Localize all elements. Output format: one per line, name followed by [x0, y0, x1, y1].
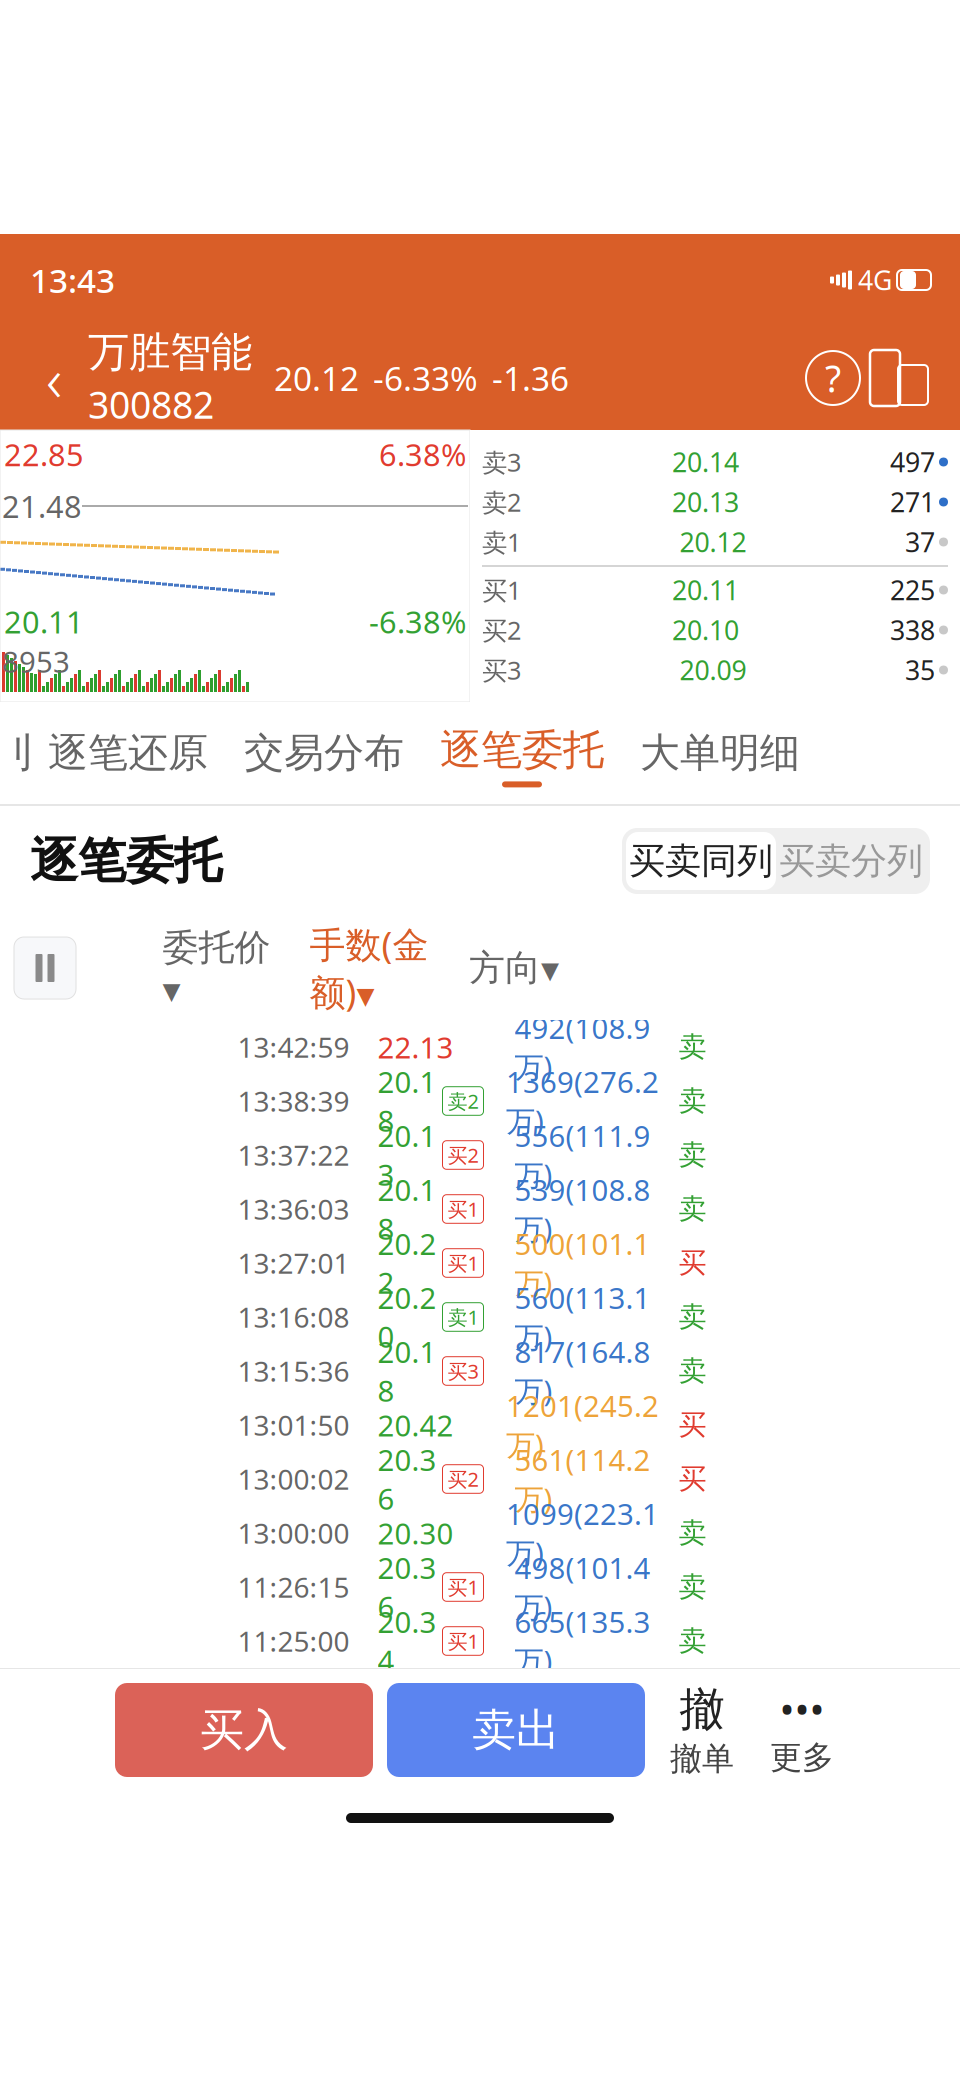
staticText: 13:43 — [30, 258, 115, 302]
staticText: 11:26:15 — [237, 1568, 349, 1606]
staticText: 买卖分列 — [779, 839, 923, 883]
staticText: 20.42 — [377, 1405, 453, 1444]
staticText: 卖 — [678, 1192, 706, 1226]
staticText: 561(114.2万) — [514, 1440, 650, 1518]
button[interactable]: 13:37:22 — [0, 1128, 960, 1182]
staticText: 卖 — [678, 1516, 706, 1550]
button[interactable]: 暂停 — [14, 937, 76, 999]
staticText: 20.30 — [377, 1513, 453, 1552]
staticText: 539(108.8万) — [514, 1170, 650, 1248]
button[interactable]: 买入 — [115, 1683, 373, 1777]
staticText: 20.22 — [377, 1224, 436, 1302]
staticText: 13:36:03 — [237, 1190, 349, 1228]
staticText: 13:16:08 — [237, 1298, 349, 1336]
staticText: 买2 — [482, 613, 521, 647]
staticText: -6.33% — [373, 356, 478, 400]
button[interactable]: 13:00:02 — [0, 1452, 960, 1506]
staticText: 13:15:36 — [237, 1352, 349, 1390]
staticText: 20.11 — [672, 572, 739, 608]
button[interactable]: 13:42:59 — [0, 1020, 960, 1074]
staticText: ? — [825, 353, 841, 403]
staticText: 手数(金额)▾ — [309, 920, 428, 1016]
staticText: 300882 — [88, 380, 214, 429]
staticText: 37 — [905, 524, 935, 560]
staticText: 卖 — [678, 1138, 706, 1172]
button[interactable]: 13:27:01 — [0, 1236, 960, 1290]
staticText: 35 — [905, 652, 935, 688]
staticText: 卖2 — [482, 485, 521, 519]
staticText: 11:25:00 — [237, 1622, 349, 1660]
staticText: 买卖同列 — [629, 839, 773, 883]
staticText: 225 — [890, 572, 935, 608]
staticText: 20.36 — [377, 1548, 436, 1626]
button[interactable]: 卖出 — [387, 1683, 645, 1777]
staticText: 22.13 — [377, 1027, 453, 1066]
button[interactable]: 交易分布 — [226, 728, 422, 777]
staticText: 20.18 — [377, 1332, 436, 1410]
staticText: 1201(245.2万) — [506, 1386, 659, 1464]
staticText: 13:38:39 — [237, 1082, 349, 1120]
staticText: 卖 — [678, 1300, 706, 1334]
staticText: 13:00:02 — [237, 1460, 349, 1498]
button[interactable]: 手数(金额)▾ — [279, 920, 459, 1016]
staticText: 22.85 — [4, 434, 84, 475]
staticText: 买1 — [482, 573, 521, 607]
staticText: 20.10 — [672, 612, 739, 648]
button[interactable]: 11:26:15 — [0, 1560, 960, 1614]
staticText: 20.11 — [4, 601, 84, 642]
staticText: 卖 — [678, 1354, 706, 1388]
staticText: 492(108.9万) — [514, 1008, 650, 1086]
button[interactable]: 帮助 — [806, 351, 860, 405]
staticText: 20.13 — [377, 1116, 436, 1194]
staticText: -1.36 — [492, 356, 569, 400]
staticText: 1369(276.2万) — [506, 1062, 659, 1140]
button[interactable]: 13:36:03 — [0, 1182, 960, 1236]
staticText: 13:42:59 — [237, 1028, 349, 1066]
button[interactable]: ••• — [759, 1683, 845, 1777]
button[interactable]: 买卖分列 — [776, 832, 926, 890]
staticText: 卖出 — [472, 1703, 560, 1757]
staticText: 买1 — [447, 1250, 478, 1276]
button[interactable]: 11:25:00 — [0, 1614, 960, 1668]
staticText: 13:00:00 — [237, 1514, 349, 1552]
staticText: 556(111.9万) — [514, 1116, 650, 1194]
staticText: 560(113.1万) — [514, 1278, 650, 1356]
staticText: 逐笔委托 — [440, 725, 604, 775]
button[interactable]: 委托价▾ — [154, 925, 279, 1011]
staticText: 20.18 — [377, 1062, 436, 1140]
button[interactable]: 买卖同列 — [626, 832, 776, 890]
staticText: 交易分布 — [244, 728, 404, 777]
staticText: 撤单 — [670, 1739, 734, 1778]
button[interactable]: 方向▾ — [459, 946, 569, 990]
staticText: 20.18 — [377, 1170, 436, 1248]
staticText: 4G — [858, 262, 892, 298]
button[interactable]: 逐笔委托 — [422, 719, 622, 787]
staticText: 买 — [678, 1462, 706, 1496]
button[interactable]: 13:38:39 — [0, 1074, 960, 1128]
staticText: -6.38% — [369, 601, 466, 642]
button[interactable]: 13:16:08 — [0, 1290, 960, 1344]
staticText: 买2 — [447, 1466, 478, 1492]
staticText: 8953 — [2, 642, 70, 681]
button[interactable]: 撤 — [659, 1683, 745, 1777]
staticText: 刂 — [0, 728, 36, 777]
staticText: 方向▾ — [469, 946, 559, 990]
button[interactable]: 大单明细 — [622, 728, 818, 777]
button[interactable]: 横屏 — [860, 345, 936, 411]
staticText: 委托价▾ — [162, 925, 270, 1011]
staticText: ‹ — [46, 337, 62, 419]
staticText: 20.12 — [274, 356, 359, 400]
button[interactable]: 13:00:00 — [0, 1506, 960, 1560]
button[interactable]: 逐笔还原 — [30, 728, 226, 777]
button[interactable]: 返回 — [24, 348, 84, 408]
button[interactable]: 刂 — [2, 728, 30, 777]
staticText: ••• — [779, 1683, 824, 1736]
staticText: 13:01:50 — [237, 1406, 349, 1444]
staticText: 13:37:22 — [237, 1136, 349, 1174]
staticText: 买 — [678, 1408, 706, 1442]
button[interactable]: 13:15:36 — [0, 1344, 960, 1398]
staticText: 20.20 — [377, 1278, 436, 1356]
staticText: 20.12 — [679, 524, 746, 560]
staticText: 买3 — [482, 653, 521, 687]
button[interactable]: 13:01:50 — [0, 1398, 960, 1452]
